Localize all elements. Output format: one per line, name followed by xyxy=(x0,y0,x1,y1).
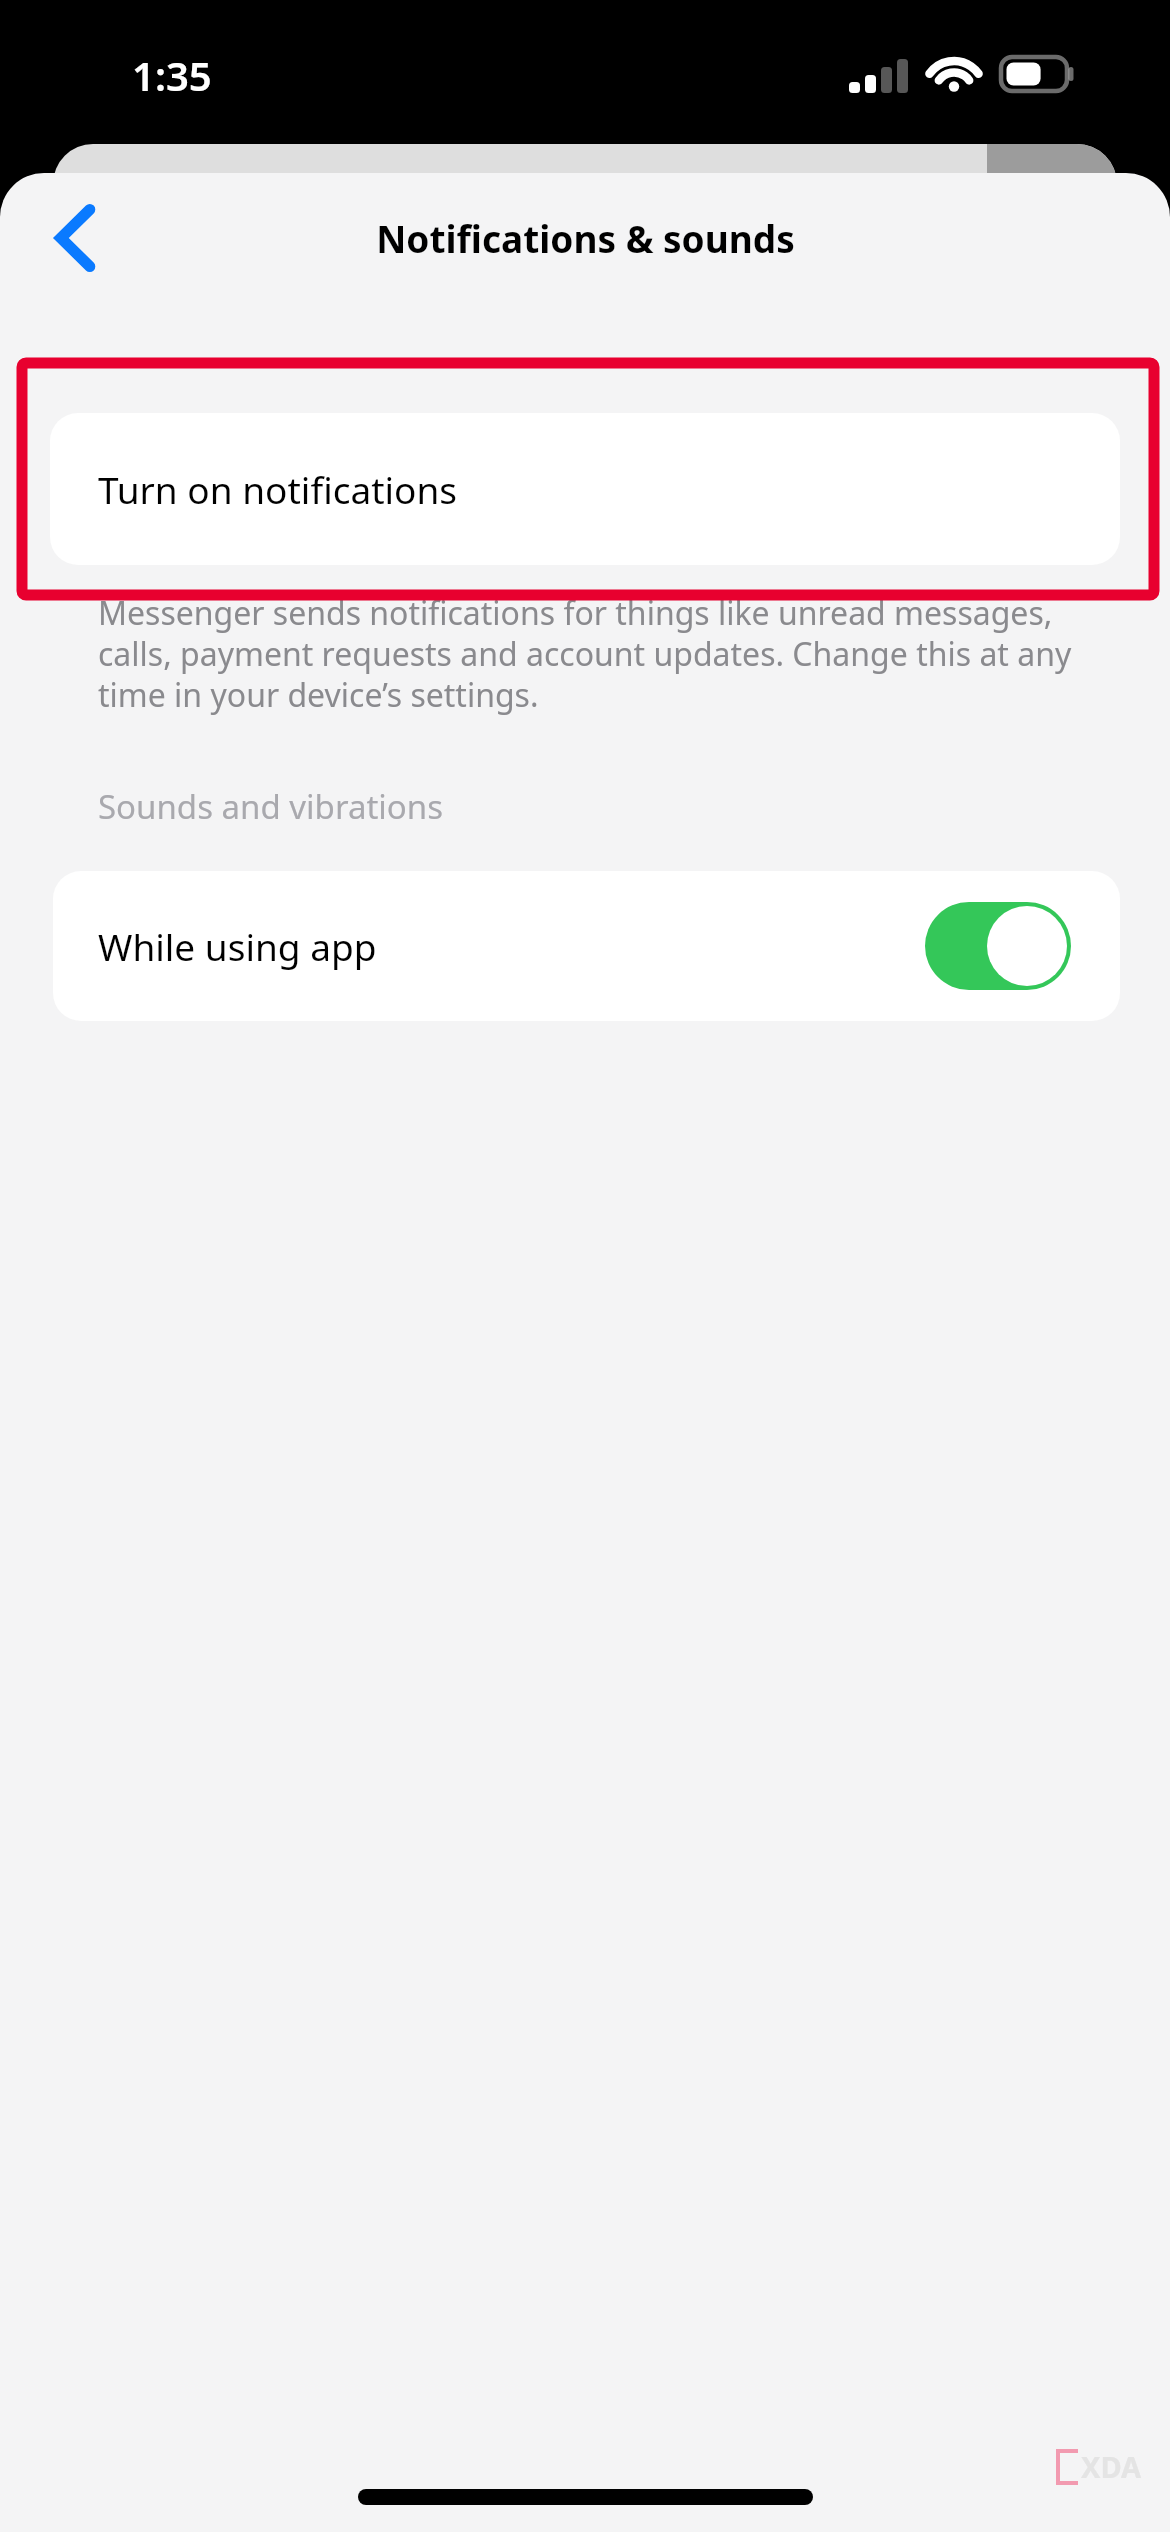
button[interactable]: Turn on notifications xyxy=(50,413,1120,565)
staticText: While using app xyxy=(98,921,925,971)
button[interactable]: While using app xyxy=(53,871,1120,1021)
staticText: Messenger sends notifications for things… xyxy=(98,591,1098,717)
button[interactable]: While using app toggle, on xyxy=(925,902,1071,990)
staticText: Turn on notifications xyxy=(98,464,458,514)
staticText: Notifications & sounds xyxy=(376,213,795,263)
staticText: 1:35 xyxy=(132,48,212,102)
staticText: Sounds and vibrations xyxy=(98,784,443,829)
staticText: XDA xyxy=(1081,2447,1142,2486)
button[interactable]: Back xyxy=(26,188,126,288)
